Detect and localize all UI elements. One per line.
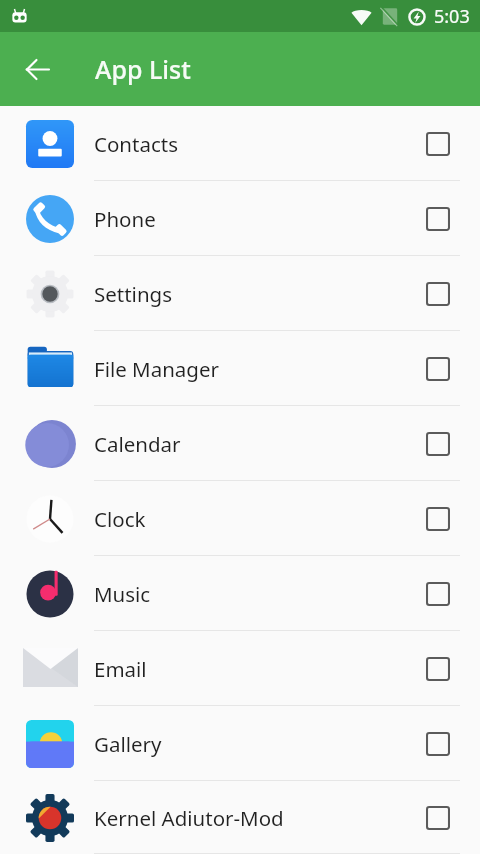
- button[interactable]: Select Phone: [426, 207, 450, 231]
- staticText: Clock: [94, 505, 146, 533]
- staticText: App List: [95, 52, 191, 86]
- staticText: Contacts: [94, 130, 178, 158]
- staticText: Email: [94, 655, 147, 683]
- staticText: Gallery: [94, 730, 162, 758]
- staticText: 5:03: [434, 4, 470, 29]
- button[interactable]: Select Email: [426, 657, 450, 681]
- button[interactable]: Select Contacts: [426, 132, 450, 156]
- button[interactable]: File Manager: [0, 331, 480, 406]
- staticText: Music: [94, 580, 151, 608]
- button[interactable]: Select Music: [426, 582, 450, 606]
- button[interactable]: Contacts: [0, 106, 480, 181]
- staticText: Settings: [94, 280, 173, 308]
- button[interactable]: Select Gallery: [426, 732, 450, 756]
- button[interactable]: Email: [0, 631, 480, 706]
- button[interactable]: Phone: [0, 181, 480, 256]
- button[interactable]: Select Settings: [426, 282, 450, 306]
- button[interactable]: Clock: [0, 481, 480, 556]
- button[interactable]: Calendar: [0, 406, 480, 481]
- staticText: File Manager: [94, 355, 220, 383]
- staticText: Calendar: [94, 430, 181, 458]
- button[interactable]: Select Kernel Adiutor-Mod: [426, 806, 450, 830]
- staticText: Phone: [94, 205, 156, 233]
- button[interactable]: Select Clock: [426, 507, 450, 531]
- button[interactable]: Gallery: [0, 706, 480, 781]
- button[interactable]: Music: [0, 556, 480, 631]
- staticText: Kernel Adiutor-Mod: [94, 804, 284, 832]
- button[interactable]: Select Calendar: [426, 432, 450, 456]
- button[interactable]: Back: [13, 45, 61, 93]
- button[interactable]: Settings: [0, 256, 480, 331]
- button[interactable]: Select File Manager: [426, 357, 450, 381]
- button[interactable]: Kernel Adiutor-Mod: [0, 781, 480, 854]
